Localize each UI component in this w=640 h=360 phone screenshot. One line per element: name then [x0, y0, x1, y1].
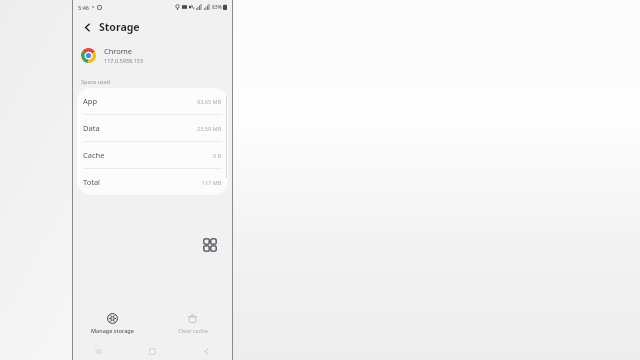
button[interactable]: Clear cache — [152, 304, 233, 342]
button[interactable]: App — [77, 88, 228, 114]
button[interactable]: Data — [77, 115, 228, 141]
staticText: Chrome — [104, 46, 133, 56]
staticText: Data — [83, 123, 100, 133]
button[interactable]: Back — [78, 18, 96, 36]
staticText: 83% — [212, 4, 222, 11]
staticText: 0 B — [213, 152, 222, 159]
button[interactable]: Recents — [72, 342, 125, 360]
staticText: 117 MB — [202, 179, 222, 186]
button[interactable]: Manage storage — [72, 304, 152, 342]
button[interactable]: Chrome — [72, 40, 233, 70]
staticText: Space used — [81, 78, 111, 85]
staticText: 93.65 MB — [197, 98, 222, 105]
staticText: 5:46 — [78, 4, 89, 11]
button[interactable]: Back — [179, 342, 233, 360]
staticText: App — [83, 96, 98, 106]
staticText: Cache — [83, 150, 105, 160]
staticText: Clear cache — [178, 327, 208, 334]
button[interactable]: Total — [77, 169, 228, 195]
staticText: Manage storage — [91, 327, 134, 334]
button[interactable]: Cache — [77, 142, 228, 168]
button[interactable]: Apps grid — [198, 233, 222, 257]
staticText: Storage — [99, 20, 140, 34]
button[interactable]: Home — [125, 342, 179, 360]
staticText: 117.0.5938.153 — [104, 57, 144, 64]
staticText: Total — [83, 177, 101, 187]
staticText: 23.59 MB — [197, 125, 222, 132]
